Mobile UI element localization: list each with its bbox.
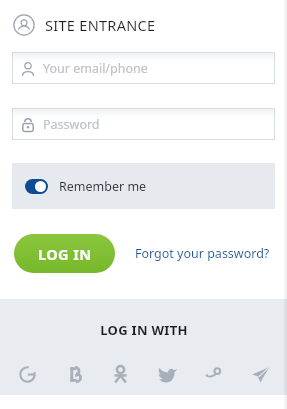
button[interactable]: Forgot your password?: [135, 245, 270, 262]
staticText: LOG IN WITH: [100, 321, 188, 339]
button[interactable]: VKontakte: [57, 357, 91, 391]
button[interactable]: Mail.ru: [196, 357, 230, 391]
staticText: Remember me: [59, 178, 147, 195]
staticText: SITE ENTRANCE: [45, 15, 156, 35]
button[interactable]: Remember me: [12, 163, 275, 209]
staticText: Your email/phone: [43, 60, 148, 77]
button[interactable]: Twitter: [150, 357, 184, 391]
button[interactable]: LOG IN: [14, 234, 115, 273]
button[interactable]: Telegram: [243, 357, 277, 391]
staticText: Forgot your password?: [135, 245, 270, 262]
other: Account: [13, 14, 35, 36]
staticText: LOG IN: [38, 244, 92, 264]
button[interactable]: Odnoklassniki: [103, 357, 137, 391]
button[interactable]: Google: [10, 357, 44, 391]
staticText: Password: [43, 116, 100, 133]
button[interactable]: Password: [12, 108, 275, 140]
button[interactable]: Your email/phone: [12, 52, 275, 84]
